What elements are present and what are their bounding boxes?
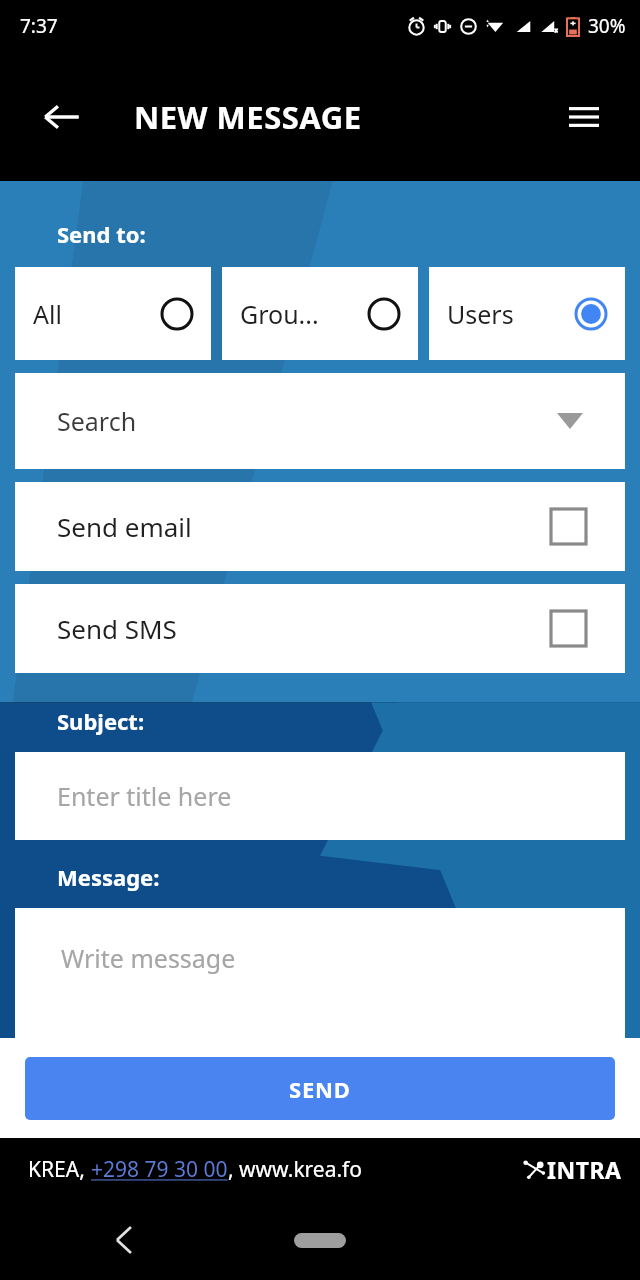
staticText: Grou...: [240, 297, 319, 331]
button[interactable]: Search: [15, 373, 625, 469]
staticText: 30%: [588, 13, 626, 39]
button[interactable]: Users: [429, 267, 625, 360]
button[interactable]: SEND: [25, 1057, 615, 1120]
staticText: All: [33, 297, 62, 331]
button[interactable]: Enter title here: [15, 752, 625, 840]
staticText: Send SMS: [57, 611, 177, 646]
button[interactable]: Grou...: [222, 267, 418, 360]
staticText: 7:37: [20, 13, 58, 39]
button[interactable]: Home: [294, 1233, 346, 1248]
button[interactable]: Send SMS: [15, 584, 625, 673]
staticText: INTRA: [547, 1154, 622, 1185]
staticText: KREA,: [28, 1155, 91, 1184]
staticText: Send email: [57, 509, 192, 544]
staticText: SEND: [289, 1074, 351, 1104]
button[interactable]: Back: [36, 91, 88, 143]
button[interactable]: All: [15, 267, 211, 360]
button[interactable]: +298 79 30 00: [91, 1155, 228, 1184]
staticText: , www.krea.fo: [228, 1155, 363, 1184]
staticText: Write message: [61, 941, 236, 975]
staticText: Subject:: [57, 706, 145, 736]
button[interactable]: Send email: [15, 482, 625, 571]
button[interactable]: Menu: [558, 91, 610, 143]
button[interactable]: Back: [100, 1216, 148, 1264]
staticText: Send to:: [57, 219, 146, 249]
staticText: Search: [57, 404, 137, 438]
staticText: Message:: [57, 862, 160, 892]
staticText: Enter title here: [57, 779, 232, 813]
staticText: Users: [447, 297, 514, 331]
staticText: NEW MESSAGE: [134, 96, 362, 138]
button[interactable]: Write message: [15, 908, 625, 1038]
